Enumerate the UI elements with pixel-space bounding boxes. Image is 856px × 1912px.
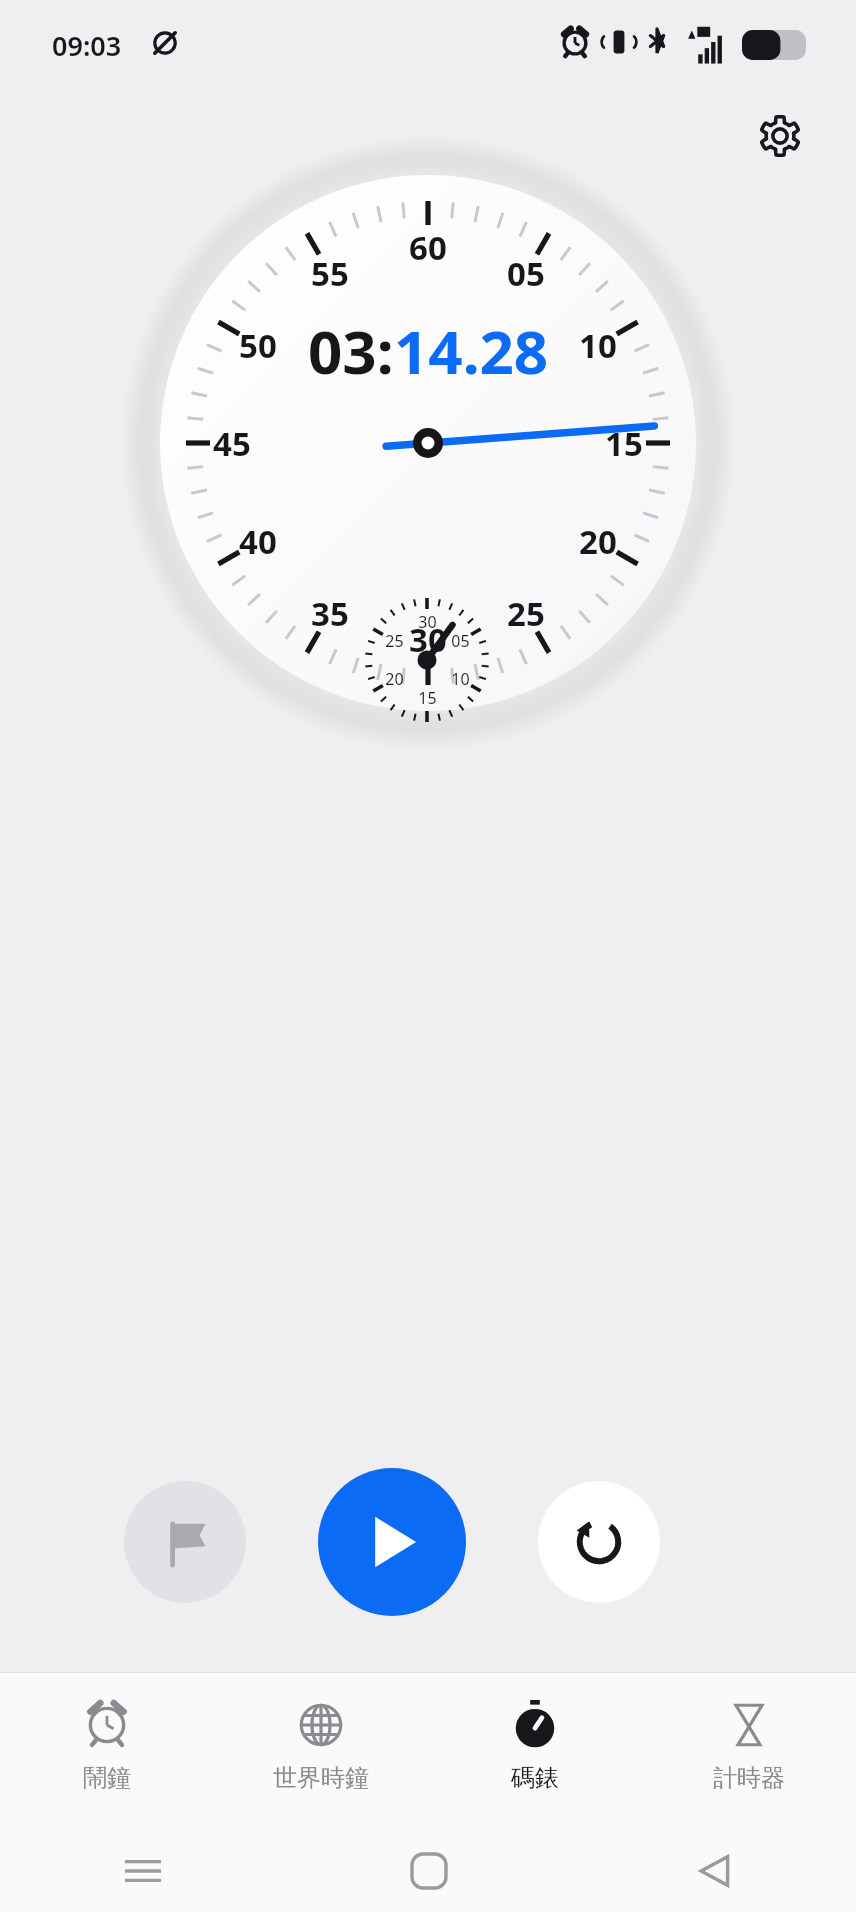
staticText: 45 [213,421,251,466]
staticText: 世界時鐘 [273,1763,369,1793]
staticText: 05 [451,630,470,652]
staticText: 20 [579,519,617,564]
staticText: 10 [579,323,617,368]
button[interactable]: Recents [0,1830,286,1912]
staticText: 60 [409,225,447,270]
staticText: 50 [239,323,277,368]
staticText: 30 [409,617,447,662]
staticText: 鬧鐘 [83,1763,131,1793]
staticText: 25 [507,591,545,636]
staticText: 14.28 [394,310,549,392]
button[interactable]: 計時器 [642,1673,856,1830]
staticText: 10 [451,668,470,690]
button[interactable]: 碼錶 [428,1673,642,1830]
staticText: 碼錶 [511,1763,559,1793]
staticText: 55 [311,251,349,296]
staticText: 30 [418,611,437,633]
staticText: 03: [308,310,394,392]
staticText: 35 [311,591,349,636]
staticText: 15 [418,687,437,709]
button[interactable]: Home [286,1830,571,1912]
staticText: 05 [507,251,545,296]
staticText: 09:03 [52,27,122,64]
button[interactable]: Lap [124,1481,246,1603]
staticText: 40 [239,519,277,564]
staticText: 15 [605,421,643,466]
staticText: 25 [385,630,404,652]
button[interactable]: Start [318,1468,466,1616]
button[interactable]: Settings [748,104,812,168]
button[interactable]: 世界時鐘 [214,1673,428,1830]
staticText: 20 [385,668,404,690]
button[interactable]: 鬧鐘 [0,1673,214,1830]
button[interactable]: Reset [538,1481,660,1603]
staticText: 計時器 [713,1763,785,1793]
button[interactable]: Back [571,1830,856,1912]
